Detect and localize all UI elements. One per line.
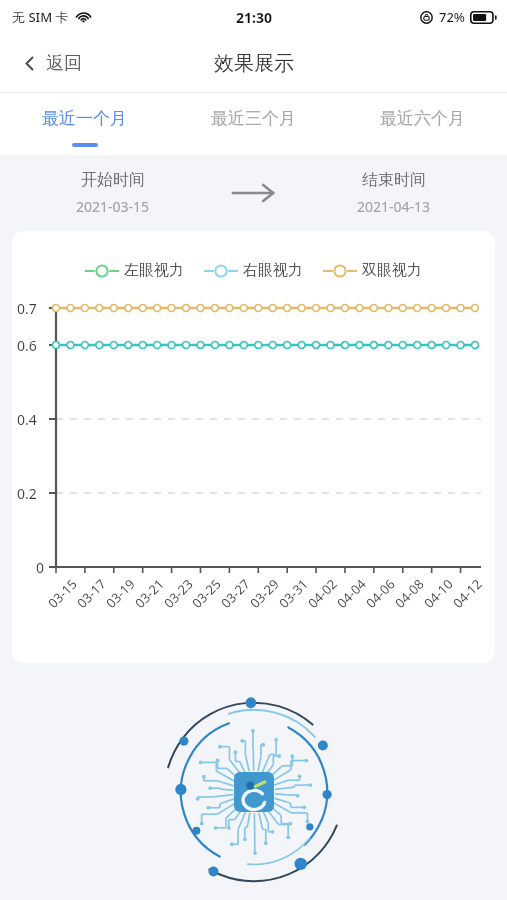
staticText: 04-02 [304, 575, 341, 612]
staticText: 左眼视力 [124, 261, 184, 280]
button[interactable]: 开始时间 [0, 155, 225, 231]
staticText: 最近六个月 [380, 108, 465, 129]
staticText: 结束时间 [362, 170, 426, 190]
staticText: 2021-04-13 [357, 197, 431, 216]
staticText: 最近一个月 [42, 108, 127, 129]
staticText: 最近三个月 [211, 108, 296, 129]
staticText: 03-17 [73, 575, 110, 612]
staticText: 03-25 [188, 575, 225, 612]
staticText: 03-21 [131, 575, 168, 612]
staticText: 0.7 [17, 299, 37, 318]
staticText: 0.4 [17, 410, 37, 429]
staticText: 04-10 [420, 575, 457, 612]
staticText: 21:30 [236, 8, 272, 27]
staticText: 03-23 [160, 575, 197, 612]
staticText: 72% [439, 8, 465, 26]
staticText: 0.6 [17, 336, 37, 355]
staticText: 03-15 [44, 575, 81, 612]
button[interactable]: 结束时间 [281, 155, 507, 231]
staticText: 右眼视力 [243, 261, 303, 280]
other: App logo [0, 697, 507, 887]
staticText: 03-31 [275, 575, 312, 612]
staticText: 04-12 [449, 575, 486, 612]
staticText: 03-19 [102, 575, 139, 612]
staticText: 无 SIM 卡 [12, 8, 69, 26]
staticText: 返回 [46, 52, 82, 75]
staticText: 双眼视力 [362, 261, 422, 280]
button[interactable]: 返回 [14, 44, 90, 83]
staticText: 04-06 [362, 575, 399, 612]
staticText: 0.2 [17, 484, 37, 503]
staticText: 04-04 [333, 575, 370, 612]
button[interactable]: 最近六个月 [338, 93, 507, 155]
staticText: 04-08 [391, 575, 428, 612]
button[interactable]: 最近一个月 [0, 93, 169, 155]
staticText: 03-29 [246, 575, 283, 612]
staticText: 03-27 [217, 575, 254, 612]
staticText: 开始时间 [81, 170, 145, 190]
button[interactable]: 最近三个月 [169, 93, 338, 155]
staticText: 效果展示 [214, 51, 294, 76]
staticText: 2021-03-15 [76, 197, 150, 216]
staticText: 0 [36, 558, 45, 577]
